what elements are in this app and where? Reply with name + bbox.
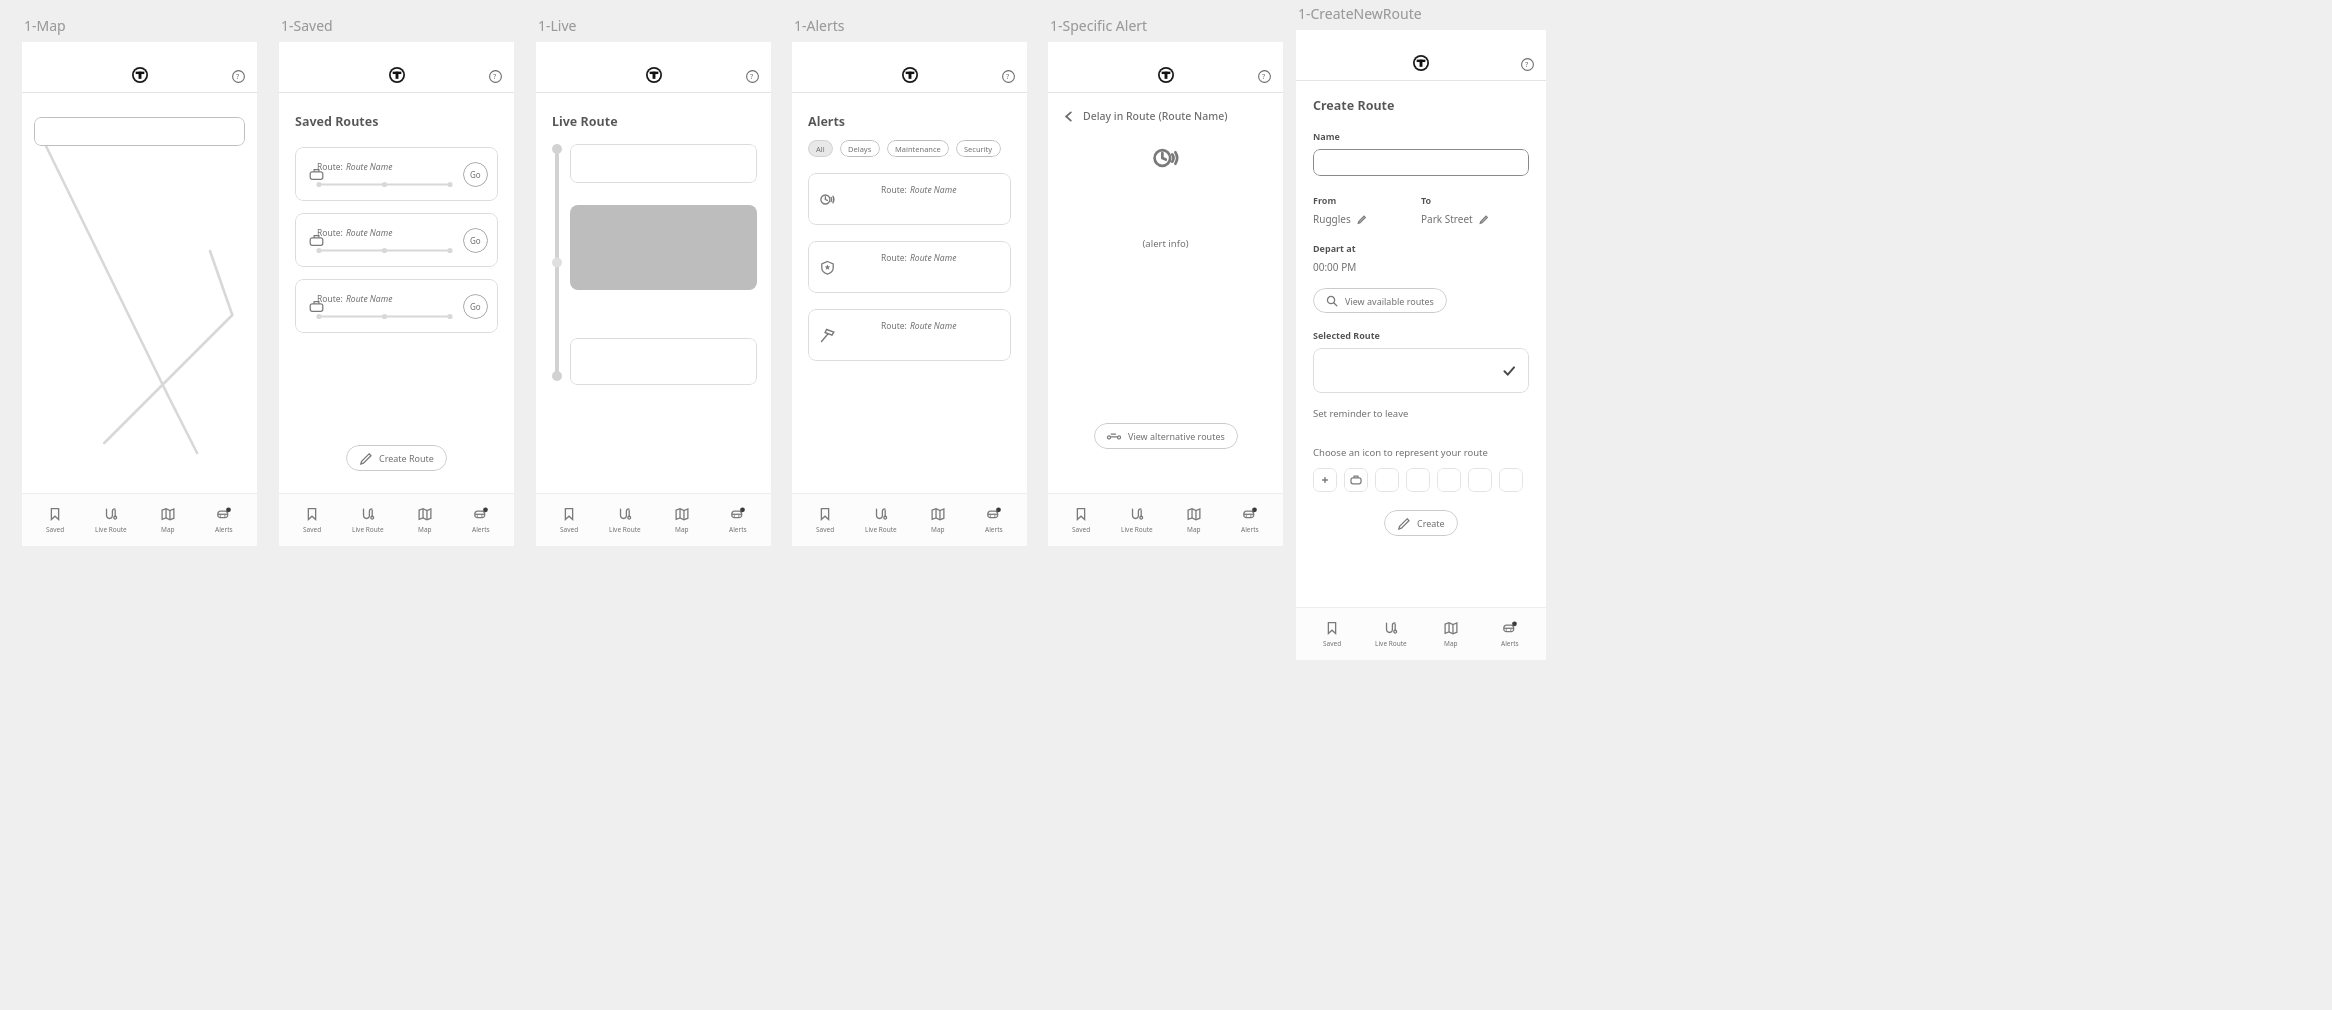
button[interactable]: Map [659,503,705,538]
staticText: Live Route [865,525,897,534]
button[interactable]: Map [1171,503,1217,538]
button[interactable]: Saved [1309,617,1355,652]
button[interactable] [570,144,757,183]
staticText: 00:00 PM [1313,260,1357,274]
button[interactable]: Ruggles [1313,212,1366,226]
button[interactable]: Back [1062,109,1269,123]
staticText: Create Route [1313,97,1395,114]
staticText: Route: [881,320,910,332]
staticText: Live Route [352,525,384,534]
staticText: Delays [848,144,872,154]
staticText: Delay in Route (Route Name) [1083,109,1228,123]
button[interactable]: Map [1428,617,1474,652]
button[interactable]: Alerts [1227,503,1273,538]
button[interactable]: Go [463,162,488,187]
staticText: Alerts [808,113,846,130]
button[interactable]: Delays [840,140,880,157]
button[interactable]: Route icon option [1344,468,1368,492]
staticText: 1-Alerts [794,16,845,35]
button[interactable]: Route: [808,173,1011,225]
staticText: Route: [317,293,346,305]
staticText: Security [964,144,993,154]
button[interactable]: MBTA home [389,67,405,83]
button[interactable]: Saved [1058,503,1104,538]
button[interactable]: MBTA home [1413,55,1429,71]
button[interactable]: Create [1384,510,1458,536]
button[interactable]: Route icon option [1375,468,1399,492]
button[interactable]: Alerts [458,503,504,538]
button[interactable]: Map [402,503,448,538]
staticText: Map [418,525,432,534]
button[interactable] [570,338,757,385]
button[interactable]: Route: [808,309,1011,361]
button[interactable]: Saved [289,503,335,538]
button[interactable]: Route icon option [1468,468,1492,492]
button[interactable]: Park Street [1421,212,1488,226]
button[interactable]: Help [489,70,502,83]
button[interactable]: Alerts [715,503,761,538]
staticText: Route: [317,227,346,239]
staticText: Ruggles [1313,212,1351,226]
button[interactable]: Route: [295,213,498,267]
staticText: Depart at [1313,242,1356,254]
button[interactable]: MBTA home [132,67,148,83]
staticText: Saved [1323,639,1342,648]
button[interactable]: Go [463,294,488,319]
button[interactable] [1313,149,1529,176]
staticText: Route Name [346,293,393,305]
button[interactable]: View available routes [1313,288,1447,313]
button[interactable]: Help [746,70,759,83]
button[interactable]: Help [1258,70,1271,83]
staticText: (alert info) [1048,237,1283,250]
button[interactable]: MBTA home [1158,67,1174,83]
button[interactable]: MBTA home [646,67,662,83]
button[interactable]: Route icon option [1313,468,1337,492]
button[interactable]: Live Route [858,503,904,538]
staticText: 1-Map [24,16,66,35]
button[interactable]: Live Route [1114,503,1160,538]
button[interactable]: Route icon option [1406,468,1430,492]
button[interactable]: Live Route [1368,617,1414,652]
button[interactable]: Map [145,503,191,538]
button[interactable]: Help [1521,58,1534,71]
button[interactable]: Saved [32,503,78,538]
other: Edit to [1479,215,1488,224]
button[interactable]: Route: [295,279,498,333]
staticText: Go [470,235,481,246]
button[interactable]: Security [956,140,1001,157]
button[interactable]: Live Route [602,503,648,538]
button[interactable]: Route: [295,147,498,201]
button[interactable]: Go [463,228,488,253]
button[interactable]: Live Route [345,503,391,538]
button[interactable]: Saved [546,503,592,538]
button[interactable] [34,117,245,146]
other: Edit from [1357,215,1366,224]
button[interactable]: MBTA home [902,67,918,83]
staticText: Map [1444,639,1458,648]
staticText: Alerts [729,525,747,534]
button[interactable]: Saved [802,503,848,538]
button[interactable]: Map [915,503,961,538]
button[interactable]: Help [232,70,245,83]
button[interactable]: Alerts [201,503,247,538]
button[interactable]: Create Route [346,445,447,471]
button[interactable]: Maintenance [887,140,949,157]
button[interactable]: Live Route [88,503,134,538]
button[interactable]: Route: [808,241,1011,293]
staticText: ? [1525,59,1529,69]
button[interactable]: Selected [1313,348,1529,393]
staticText: Alerts [1241,525,1259,534]
staticText: 1-Live [538,16,577,35]
staticText: Alerts [985,525,1003,534]
staticText: Route Name [346,161,393,173]
button[interactable]: Alerts [1487,617,1533,652]
button[interactable]: All [808,140,833,157]
button[interactable] [570,205,757,290]
button[interactable]: Route icon option [1437,468,1461,492]
button[interactable]: Route icon option [1499,468,1523,492]
staticText: 1-Saved [281,16,333,35]
button[interactable]: View alternative routes [1094,423,1238,449]
staticText: Create [1417,517,1445,529]
button[interactable]: Help [1002,70,1015,83]
button[interactable]: Alerts [971,503,1017,538]
